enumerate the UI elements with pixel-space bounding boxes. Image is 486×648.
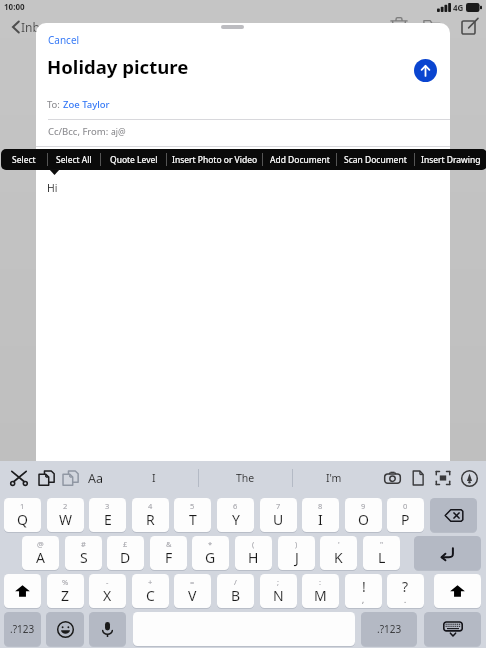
- staticText: .?123: [10, 622, 35, 636]
- staticText: X: [103, 586, 112, 605]
- staticText: 3: [105, 501, 110, 511]
- button[interactable]: +: [132, 574, 169, 608]
- staticText: +: [148, 577, 153, 587]
- button[interactable]: [4, 574, 41, 608]
- staticText: aj@: [111, 126, 126, 138]
- button[interactable]: Insert Photo or Video: [167, 149, 262, 170]
- staticText: Insert Photo or Video: [172, 154, 258, 166]
- staticText: 9: [361, 501, 366, 511]
- button[interactable]: Cc/Bcc, From:: [48, 125, 126, 138]
- button[interactable]: Document: [406, 466, 430, 490]
- button[interactable]: ": [363, 536, 400, 570]
- button[interactable]: The: [199, 461, 292, 495]
- button[interactable]: 3: [89, 498, 126, 532]
- button[interactable]: [46, 612, 84, 646]
- staticText: Quote Level: [110, 154, 158, 166]
- button[interactable]: £: [107, 536, 144, 570]
- button[interactable]: ;: [260, 574, 297, 608]
- button[interactable]: 0: [387, 498, 424, 532]
- staticText: P: [401, 510, 410, 529]
- staticText: 5: [190, 501, 195, 511]
- button[interactable]: I: [110, 461, 198, 495]
- button[interactable]: (: [235, 536, 272, 570]
- button[interactable]: Add Document: [263, 149, 336, 170]
- button[interactable]: :: [302, 574, 339, 608]
- button[interactable]: &: [150, 536, 187, 570]
- button[interactable]: *: [192, 536, 229, 570]
- button[interactable]: [424, 612, 481, 646]
- button[interactable]: ': [320, 536, 357, 570]
- button[interactable]: 6: [217, 498, 254, 532]
- button[interactable]: Inb: [12, 19, 40, 35]
- button[interactable]: To:: [47, 98, 110, 111]
- staticText: Inb: [21, 19, 40, 35]
- staticText: &: [166, 539, 172, 549]
- button[interactable]: I'm: [293, 461, 375, 495]
- button[interactable]: Send: [414, 59, 437, 82]
- staticText: Q: [17, 510, 28, 529]
- staticText: (: [252, 539, 255, 549]
- staticText: ;: [277, 577, 280, 587]
- button[interactable]: %: [47, 574, 84, 608]
- button[interactable]: Select: [1, 149, 47, 170]
- button[interactable]: Copy: [34, 466, 58, 490]
- button[interactable]: 8: [302, 498, 339, 532]
- button[interactable]: [434, 574, 481, 608]
- staticText: V: [188, 586, 197, 605]
- staticText: To:: [47, 98, 63, 111]
- staticText: Hi: [47, 181, 58, 195]
- staticText: Add Document: [270, 154, 330, 166]
- button[interactable]: Scan Document: [337, 149, 414, 170]
- staticText: 10:00: [4, 1, 25, 12]
- button[interactable]: -: [89, 574, 126, 608]
- staticText: J: [295, 548, 299, 567]
- button[interactable]: Paste: [58, 466, 82, 490]
- button[interactable]: 4: [132, 498, 169, 532]
- button[interactable]: [89, 612, 126, 646]
- staticText: /: [234, 577, 237, 587]
- button[interactable]: [430, 498, 477, 532]
- button[interactable]: 5: [174, 498, 211, 532]
- staticText: Zoe Taylor: [63, 98, 110, 111]
- button[interactable]: Scan Document: [431, 466, 455, 490]
- button[interactable]: Select All: [48, 149, 100, 170]
- button[interactable]: 9: [345, 498, 382, 532]
- button[interactable]: Markup: [457, 466, 481, 490]
- staticText: T: [189, 510, 197, 529]
- staticText: ,: [362, 594, 365, 605]
- button[interactable]: 2: [47, 498, 84, 532]
- staticText: I: [152, 471, 156, 485]
- button[interactable]: Compose: [457, 14, 481, 38]
- staticText: O: [358, 510, 369, 529]
- staticText: Y: [232, 510, 240, 529]
- button[interactable]: ): [278, 536, 315, 570]
- button[interactable]: Cancel: [48, 33, 80, 47]
- button[interactable]: .?123: [361, 612, 417, 646]
- button[interactable]: Insert Drawing: [415, 149, 486, 170]
- staticText: 0: [403, 501, 408, 511]
- staticText: 4G: [453, 2, 464, 13]
- staticText: E: [104, 510, 112, 529]
- button[interactable]: [414, 536, 481, 570]
- button[interactable]: .?123: [4, 612, 41, 646]
- button[interactable]: !: [345, 574, 382, 608]
- button[interactable]: Aa: [84, 466, 108, 490]
- staticText: R: [146, 510, 155, 529]
- staticText: .: [404, 594, 407, 605]
- button[interactable]: Quote Level: [101, 149, 166, 170]
- staticText: Select: [12, 154, 36, 166]
- button[interactable]: 1: [4, 498, 41, 532]
- button[interactable]: 7: [260, 498, 297, 532]
- button[interactable]: @: [22, 536, 59, 570]
- button[interactable]: #: [65, 536, 102, 570]
- button[interactable]: Cut: [6, 466, 32, 490]
- staticText: C: [146, 586, 155, 605]
- staticText: !: [362, 577, 366, 596]
- staticText: I: [318, 510, 323, 529]
- button[interactable]: ?: [387, 574, 424, 608]
- button[interactable]: Camera: [380, 466, 404, 490]
- staticText: U: [273, 510, 284, 529]
- button[interactable]: /: [217, 574, 254, 608]
- button[interactable]: =: [174, 574, 211, 608]
